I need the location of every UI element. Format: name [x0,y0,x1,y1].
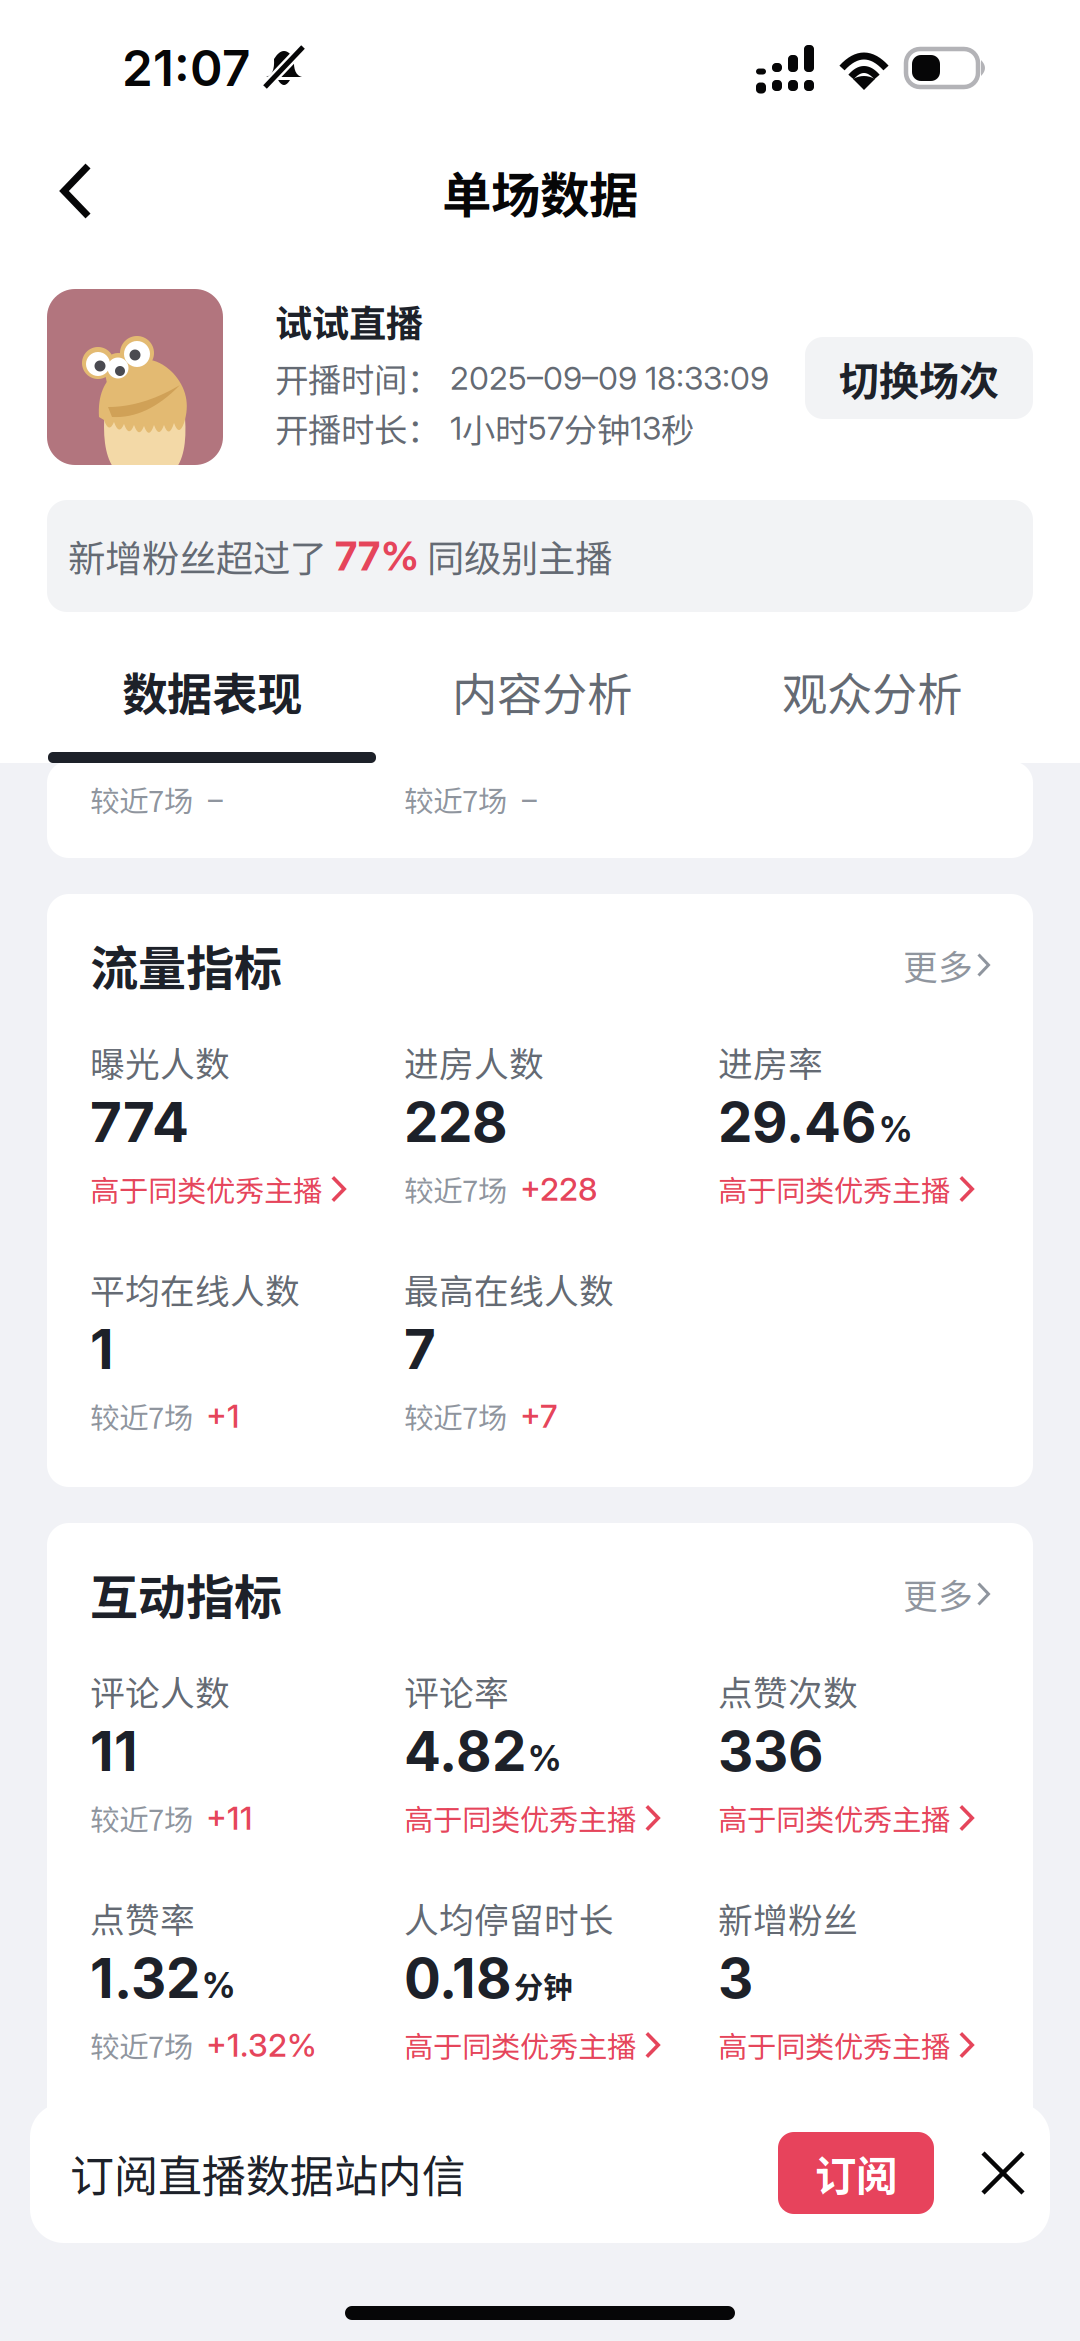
staticText: 平均在线人数 [90,1264,300,1314]
staticText: 1.32 [90,1945,200,2011]
staticText: 订阅直播数据站内信 [70,2141,466,2205]
staticText: 分钟 [514,1964,572,2006]
button[interactable]: 曝光人数 [90,1042,404,1205]
button[interactable]: 进房人数 [404,1042,718,1205]
staticText: +7 [520,1397,557,1435]
staticText: 7 [404,1316,436,1382]
staticText: 评论率 [404,1666,509,1716]
staticText: % [879,1108,912,1150]
staticText: 0.18 [404,1945,512,2011]
staticText: 评论人数 [90,1666,230,1716]
staticText: 较近7场 [404,1395,507,1437]
staticText: 228 [404,1089,508,1155]
staticText: 3 [718,1945,753,2011]
staticText: 高于同类优秀主播 [718,1797,950,1839]
staticText: 57 [528,409,564,447]
staticText: 开播时间： [275,354,440,402]
button[interactable]: 观众分析 [707,633,1037,763]
staticText: 点赞率 [90,1893,195,1943]
staticText: 切换场次 [839,349,999,407]
staticText: 1 [450,409,462,447]
staticText: +1 [206,1397,240,1435]
staticText: 秒 [661,404,694,452]
button[interactable]: 平均在线人数 [90,1269,404,1432]
staticText: % [202,1964,235,2006]
staticText: 进房人数 [404,1037,544,1087]
staticText: 更多 [903,1569,973,1619]
staticText: 4.82 [404,1718,526,1784]
staticText: 互动指标 [90,1559,282,1629]
staticText: 1 [90,1316,114,1382]
staticText: 336 [718,1718,824,1784]
staticText: 进房率 [718,1037,823,1087]
staticText: 流量指标 [90,930,282,1000]
staticText: 高于同类优秀主播 [718,1168,950,1210]
button[interactable]: 评论人数 [90,1671,404,1834]
staticText: 高于同类优秀主播 [404,2024,636,2066]
staticText: 29.46 [718,1089,877,1155]
staticText: 新增粉丝 [718,1893,858,1943]
staticText: 较近7场 [90,2024,193,2066]
staticText: 最高在线人数 [404,1264,614,1314]
button[interactable]: 进房率 [718,1042,1032,1205]
button[interactable]: 点赞次数 [718,1671,1032,1834]
staticText: 高于同类优秀主播 [718,2024,950,2066]
button[interactable]: 人均停留时长 [404,1898,718,2061]
staticText: – [208,781,223,817]
staticText: % [528,1737,561,1779]
staticText: 试试直播 [275,294,423,348]
staticText: 曝光人数 [90,1037,230,1087]
button[interactable]: 返回 [0,136,122,234]
staticText: 21:07 [122,38,250,98]
staticText: 点赞次数 [718,1666,858,1716]
staticText: 订阅 [815,2143,897,2203]
staticText: 高于同类优秀主播 [404,1797,636,1839]
staticText: 77% [335,532,419,580]
staticText: 人均停留时长 [404,1893,614,1943]
staticText: 更多 [903,940,973,990]
button[interactable]: 数据表现 [47,633,377,763]
staticText: 高于同类优秀主播 [90,1168,322,1210]
staticText: 新增粉丝超过了 [68,529,335,583]
staticText: +1.32% [206,2026,317,2064]
staticText: 774 [90,1089,189,1155]
button[interactable]: 关闭 [956,2128,1050,2218]
button[interactable]: 评论率 [404,1671,718,1834]
button[interactable]: 订阅 [778,2132,934,2214]
staticText: – [522,781,537,817]
button[interactable]: 切换场次 [805,337,1033,419]
staticText: 数据表现 [122,658,302,724]
button[interactable]: 新增粉丝 [718,1898,1032,2061]
staticText: 较近7场 [404,1168,507,1210]
staticText: 较近7场 [90,1395,193,1437]
staticText: 观众分析 [782,658,962,724]
staticText: 较近7场 [404,778,507,820]
button[interactable]: 内容分析 [377,633,707,763]
staticText: 单场数据 [442,156,638,228]
staticText: 小时 [462,404,528,452]
staticText: 11 [90,1718,138,1784]
button[interactable]: 更多 [873,930,990,1000]
staticText: 13 [630,409,661,447]
staticText: 较近7场 [90,778,193,820]
button[interactable]: 更多 [873,1559,990,1629]
staticText: +228 [520,1170,597,1208]
staticText: 较近7场 [90,1797,193,1839]
staticText: 2025–09–09 18:33:09 [450,359,769,397]
button[interactable]: 最高在线人数 [404,1269,718,1432]
staticText: +11 [206,1799,253,1837]
staticText: 同级别主播 [419,529,612,583]
staticText: 内容分析 [452,658,632,724]
staticText: 分钟 [564,404,630,452]
button[interactable]: 点赞率 [90,1898,404,2061]
staticText: 开播时长： [275,404,440,452]
